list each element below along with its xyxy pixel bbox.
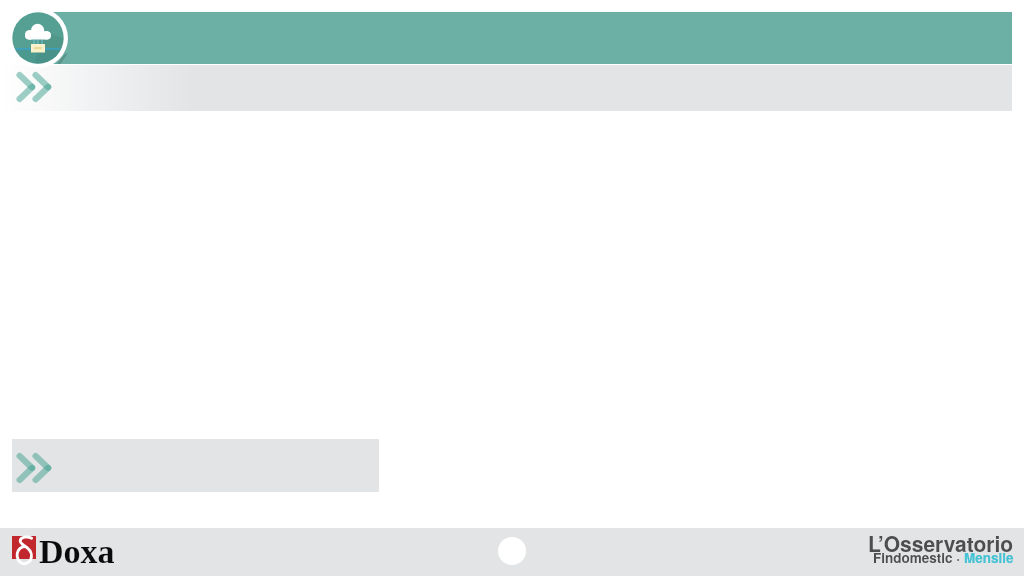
button[interactable]: Caption bar xyxy=(12,439,379,492)
staticText: Mensile xyxy=(964,548,1014,566)
staticText: Doxa xyxy=(39,533,115,571)
button[interactable]: Subtitle bar xyxy=(0,65,1012,111)
staticText: L’Osservatorio xyxy=(868,528,1014,558)
button[interactable]: L’Osservatorio xyxy=(868,528,1014,576)
button[interactable]: Doxa xyxy=(12,533,115,571)
button[interactable]: Cloud network icon xyxy=(8,8,68,68)
button[interactable]: Slide title banner xyxy=(40,12,1012,64)
button[interactable]: Page indicator xyxy=(498,537,526,565)
staticText: Findomestic · xyxy=(873,548,964,566)
